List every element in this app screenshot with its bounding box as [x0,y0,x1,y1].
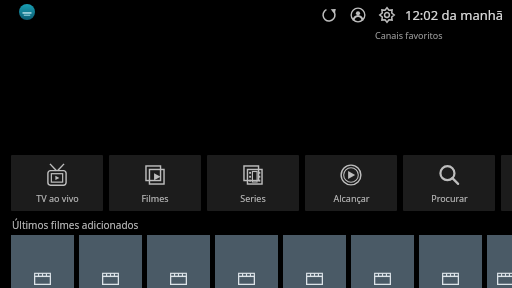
staticText: 12:02 da manhã [405,6,504,24]
staticText: Procurar [431,192,468,204]
button[interactable]: Series [207,155,299,211]
staticText: Series [240,192,266,204]
button[interactable]: Configurações [374,2,400,28]
button[interactable]: Filme [11,235,74,288]
staticText: Últimos filmes adicionados [12,218,139,232]
button[interactable]: Conta [345,2,371,28]
button[interactable]: TV ao vivo [11,155,103,211]
button[interactable]: Filmes [109,155,201,211]
button[interactable]: Filme [79,235,142,288]
staticText: Alcançar [333,192,370,204]
button[interactable]: Atualizar [316,2,342,28]
button[interactable]: Filme [487,235,512,288]
button[interactable]: Procurar [403,155,495,211]
staticText: TV ao vivo [36,192,79,204]
staticText: Filmes [141,192,169,204]
button[interactable]: Filme [283,235,346,288]
button[interactable]: Alcançar [305,155,397,211]
button[interactable]: Logotipo [18,3,36,21]
button[interactable]: Filme [147,235,210,288]
staticText: Canais favoritos [375,29,443,41]
button[interactable]: Filme [419,235,482,288]
button[interactable]: Filme [351,235,414,288]
button[interactable]: Filme [215,235,278,288]
